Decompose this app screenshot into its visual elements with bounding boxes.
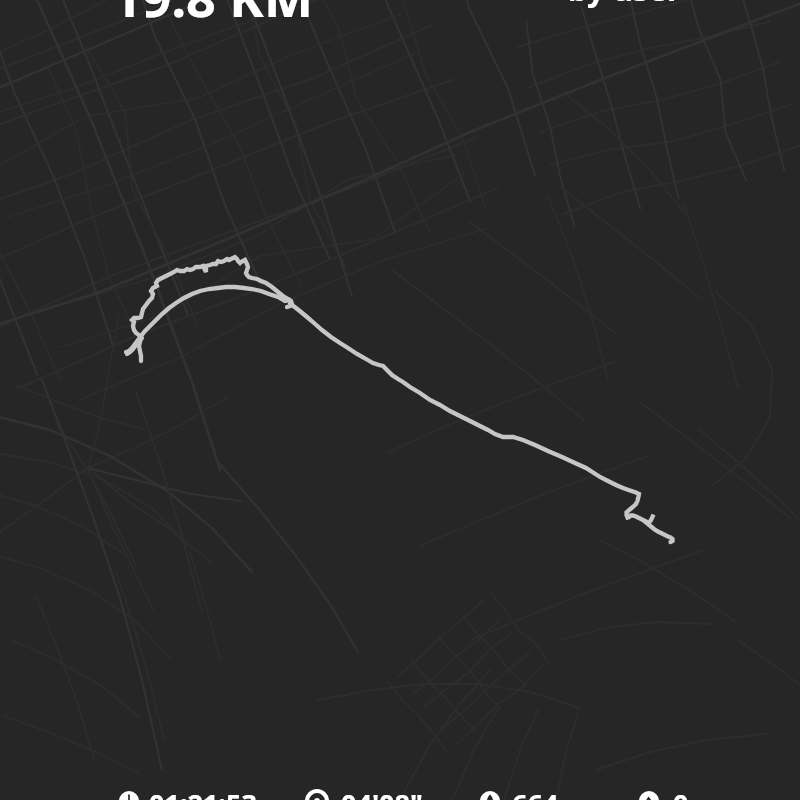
button[interactable]: 0 metres elevation (639, 785, 783, 800)
button[interactable]: Duration 01:21:53 (119, 785, 259, 800)
staticText: 01:21:53 (149, 785, 257, 800)
button[interactable]: by user (568, 0, 681, 10)
button[interactable]: Activity route map (0, 0, 800, 800)
button[interactable]: Average pace 4 minutes 8 seconds (307, 785, 451, 800)
staticText: by user (568, 0, 681, 10)
staticText: 04'08" (341, 785, 423, 800)
staticText: 664 (512, 785, 559, 800)
staticText: 19.8 KM (112, 0, 313, 32)
button[interactable]: 664 calories (480, 785, 622, 800)
staticText: 0 (673, 785, 689, 800)
button[interactable]: 19.8 KM (112, 0, 313, 32)
